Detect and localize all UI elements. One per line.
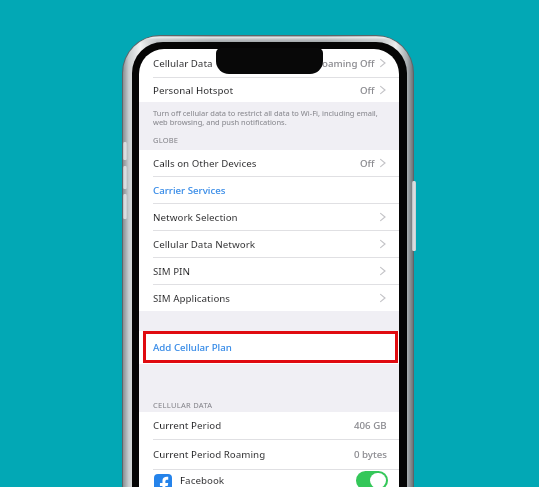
button[interactable]: Current Period Roaming [139, 440, 399, 469]
button[interactable]: Cellular Data [139, 49, 399, 77]
button[interactable]: Network Selection [139, 204, 399, 230]
staticText: SIM PIN [153, 265, 191, 278]
staticText: Cellular Data [153, 57, 213, 70]
staticText: Roaming Off [316, 57, 375, 70]
staticText: CELLULAR DATA [153, 400, 213, 410]
button[interactable]: Facebook [139, 470, 399, 487]
staticText: Turn off cellular data to restrict all d… [153, 108, 378, 128]
staticText: Current Period Roaming [153, 448, 266, 461]
staticText: Facebook [180, 474, 225, 487]
staticText: Carrier Services [153, 184, 226, 197]
button[interactable]: Toggle Facebook cellular data [356, 471, 388, 487]
button[interactable]: SIM Applications [139, 285, 399, 311]
button[interactable]: Personal Hotspot [139, 78, 399, 102]
staticText: 406 GB [354, 419, 387, 432]
staticText: Off [360, 157, 375, 170]
staticText: Off [360, 84, 375, 97]
staticText: Cellular Data Network [153, 238, 256, 251]
staticText: Personal Hotspot [153, 84, 234, 97]
staticText: Network Selection [153, 211, 238, 224]
staticText: GLOBE [153, 135, 179, 145]
button[interactable]: Current Period [139, 412, 399, 439]
button[interactable]: SIM PIN [139, 258, 399, 284]
button[interactable]: Add Cellular Plan [139, 331, 399, 364]
staticText: Add Cellular Plan [153, 341, 232, 354]
staticText: SIM Applications [153, 292, 231, 305]
button[interactable]: Cellular Data Network [139, 231, 399, 257]
button[interactable]: Carrier Services [139, 177, 399, 203]
staticText: 0 bytes [354, 448, 387, 461]
staticText: Calls on Other Devices [153, 157, 257, 170]
staticText: Current Period [153, 419, 222, 432]
button[interactable]: Calls on Other Devices [139, 150, 399, 176]
